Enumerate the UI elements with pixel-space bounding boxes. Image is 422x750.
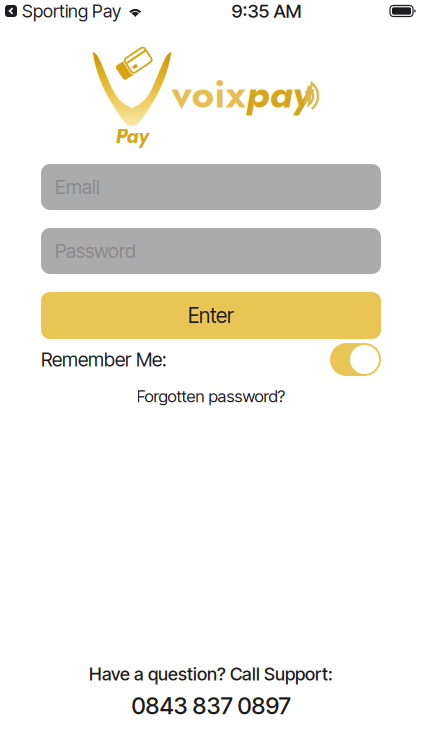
staticText: 9:35 AM	[231, 0, 301, 22]
button[interactable]: Password	[41, 228, 381, 274]
staticText: voix	[171, 66, 246, 122]
button[interactable]: 0843 837 0897	[131, 692, 290, 720]
staticText: Sporting Pay	[22, 0, 121, 22]
button[interactable]: Email	[41, 164, 381, 210]
staticText: Have a question? Call Support:	[89, 663, 333, 685]
button[interactable]: Remember Me	[330, 343, 381, 376]
staticText: pay	[246, 66, 312, 122]
button[interactable]: Forgotten password?	[136, 384, 285, 408]
staticText: Enter	[188, 303, 234, 328]
staticText: Email	[55, 175, 100, 199]
staticText: Password	[55, 239, 136, 263]
staticText: Remember Me:	[41, 348, 167, 371]
staticText: 0843 837 0897	[131, 692, 290, 720]
staticText: Pay	[115, 121, 148, 150]
button[interactable]: Sporting Pay	[5, 0, 121, 26]
staticText: Forgotten password?	[136, 386, 285, 406]
button[interactable]: Enter	[41, 292, 381, 339]
